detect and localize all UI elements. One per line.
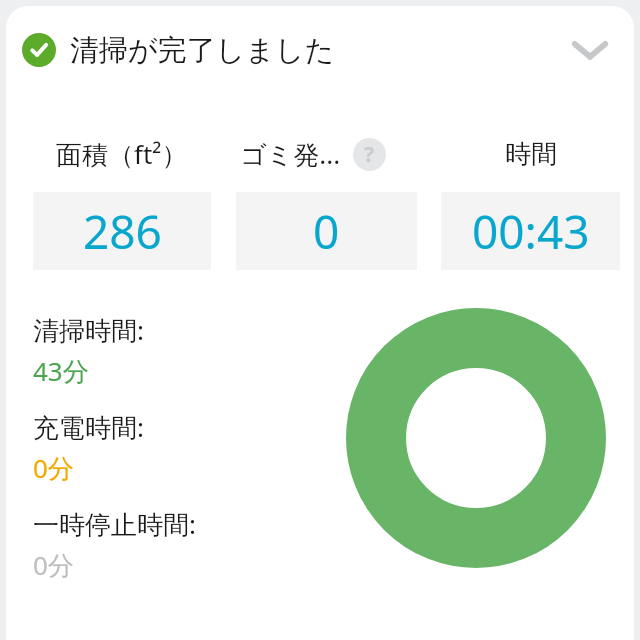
staticText: 清掃が完了しました (70, 32, 335, 69)
staticText: 清掃時間: (33, 312, 144, 348)
staticText: 0分 (33, 450, 74, 486)
staticText: 43分 (33, 353, 89, 389)
staticText: 時間 (505, 138, 557, 171)
button[interactable]: 00:43 (441, 192, 620, 270)
staticText: 286 (83, 200, 162, 263)
button[interactable]: 0 (236, 192, 417, 270)
staticText: 面積（ft²） (56, 136, 188, 172)
staticText: 0 (313, 200, 340, 263)
button[interactable]: 286 (33, 192, 211, 270)
button[interactable]: 清掃が完了しました (6, 6, 634, 94)
staticText: 一時停止時間: (33, 506, 196, 542)
button[interactable]: Help (353, 138, 386, 171)
button[interactable]: Collapse (558, 18, 622, 82)
staticText: ゴミ発... (240, 136, 341, 172)
staticText: 0分 (33, 547, 74, 583)
staticText: ? (364, 140, 375, 169)
staticText: 00:43 (472, 200, 590, 263)
staticText: 充電時間: (33, 409, 144, 445)
